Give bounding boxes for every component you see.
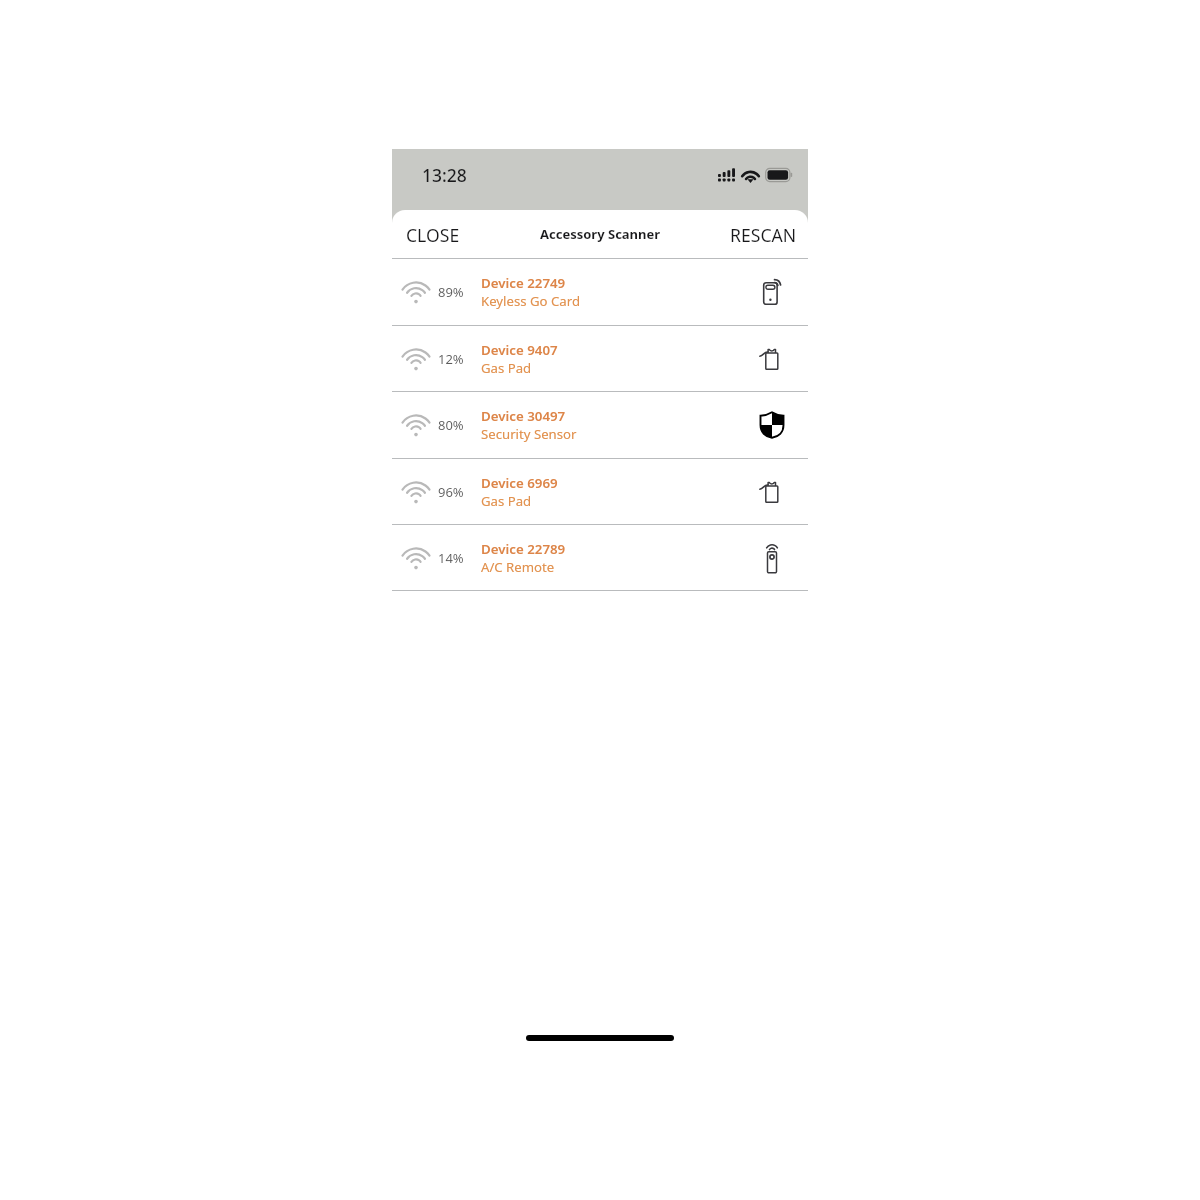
button[interactable]: 14% [392,525,808,590]
button[interactable]: 80% [392,392,808,458]
staticText: A/C Remote [481,558,555,576]
button[interactable]: 96% [392,459,808,524]
staticText: Device 6969 [481,474,558,492]
staticText: 12% [438,350,464,368]
other: Keyless Go Card [752,272,792,312]
staticText: 80% [438,416,464,434]
staticText: Keyless Go Card [481,292,580,310]
staticText: Security Sensor [481,425,577,443]
other: Security Sensor [752,405,792,445]
staticText: Device 22789 [481,540,566,558]
other: A/C Remote [752,538,792,578]
other: Gas Pad [752,339,792,379]
staticText: 96% [438,483,464,501]
staticText: RESCAN [730,223,797,245]
staticText: Gas Pad [481,359,532,377]
button[interactable]: CLOSE [392,210,478,258]
staticText: 89% [438,283,464,301]
staticText: CLOSE [406,223,460,245]
button[interactable]: RESCAN [712,210,808,258]
staticText: 14% [438,549,464,567]
staticText: 13:28 [422,163,467,187]
staticText: Device 30497 [481,407,566,425]
button[interactable]: 89% [392,259,808,325]
other: Gas Pad [752,472,792,512]
staticText: Accessory Scanner [540,225,661,243]
staticText: Device 22749 [481,274,566,292]
staticText: Gas Pad [481,492,532,510]
button[interactable]: 12% [392,326,808,391]
staticText: Device 9407 [481,341,558,359]
